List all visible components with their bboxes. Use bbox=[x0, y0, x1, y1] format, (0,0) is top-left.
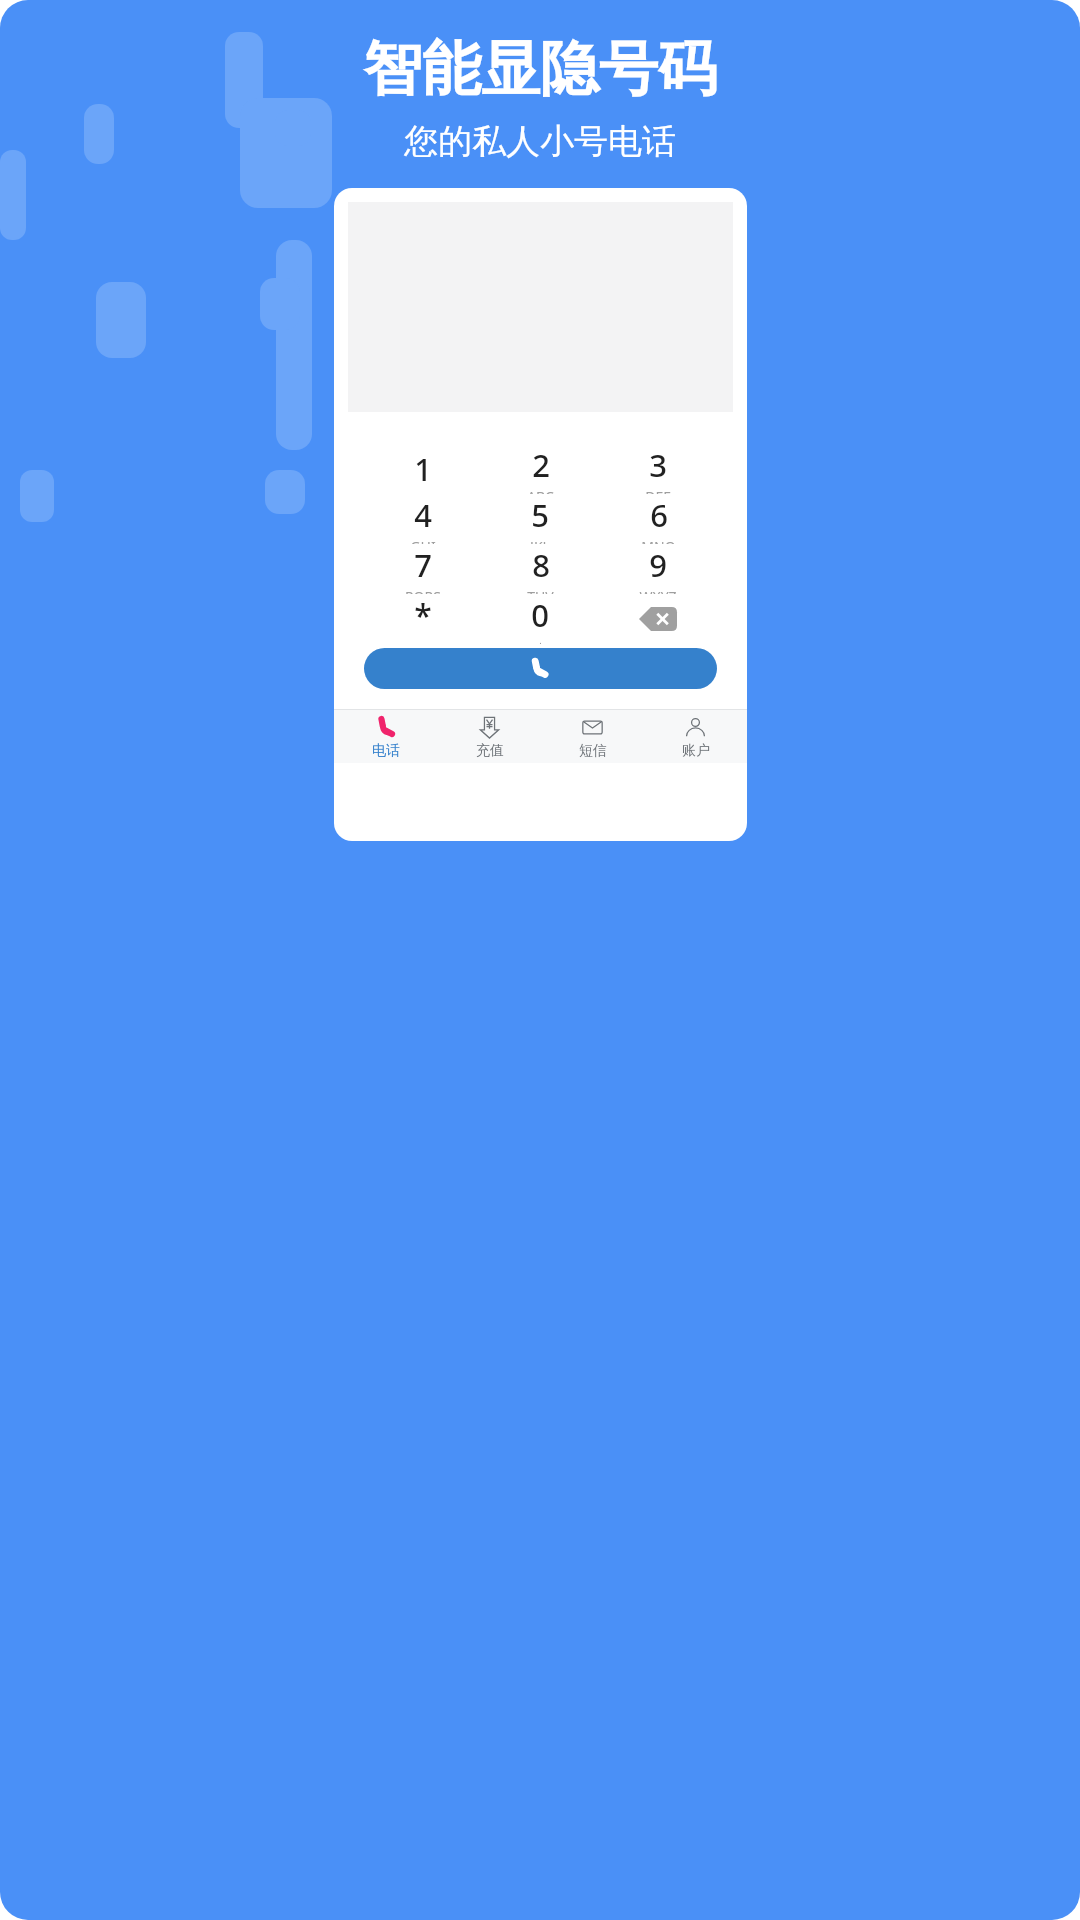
button[interactable]: 4 bbox=[364, 494, 481, 544]
staticText: 2 bbox=[532, 444, 550, 486]
staticText: MNO bbox=[641, 537, 676, 544]
staticText: 8 bbox=[532, 544, 550, 586]
button[interactable]: 1 bbox=[364, 444, 481, 494]
staticText: GHI bbox=[410, 537, 436, 544]
button[interactable]: 5 bbox=[481, 494, 599, 544]
staticText: 5 bbox=[531, 494, 549, 536]
staticText: 账户 bbox=[682, 742, 710, 760]
button[interactable]: 7 bbox=[364, 544, 481, 594]
staticText: 1 bbox=[414, 448, 432, 490]
staticText: + bbox=[536, 637, 545, 644]
staticText: 9 bbox=[649, 544, 667, 586]
staticText: TUV bbox=[527, 587, 554, 594]
staticText: 7 bbox=[414, 544, 432, 586]
button[interactable]: 账户 bbox=[644, 710, 747, 763]
button[interactable]: 0 bbox=[481, 594, 599, 644]
staticText: 0 bbox=[531, 594, 549, 636]
button[interactable]: * bbox=[364, 594, 481, 644]
button[interactable]: 电话 bbox=[334, 710, 438, 763]
button[interactable]: 6 bbox=[599, 494, 717, 544]
button[interactable]: Call bbox=[364, 648, 717, 689]
staticText: 3 bbox=[649, 444, 667, 486]
button[interactable]: 3 bbox=[599, 444, 717, 494]
staticText: 智能显隐号码 bbox=[363, 32, 717, 106]
button[interactable]: 短信 bbox=[541, 710, 644, 763]
button[interactable]: 9 bbox=[599, 544, 717, 594]
button[interactable]: 充值 bbox=[438, 710, 541, 763]
staticText: 充值 bbox=[476, 742, 504, 760]
staticText: 您的私人小号电话 bbox=[404, 120, 676, 163]
staticText: DEF bbox=[645, 487, 671, 494]
staticText: 电话 bbox=[372, 742, 400, 760]
button[interactable]: 2 bbox=[481, 444, 599, 494]
staticText: ABC bbox=[527, 487, 554, 494]
staticText: 4 bbox=[414, 494, 432, 536]
staticText: JKL bbox=[530, 537, 550, 544]
staticText: * bbox=[414, 594, 432, 638]
staticText: 短信 bbox=[579, 742, 607, 760]
button[interactable]: Delete bbox=[599, 594, 717, 644]
button[interactable]: 8 bbox=[481, 544, 599, 594]
staticText: PQRS bbox=[405, 587, 441, 594]
staticText: 6 bbox=[650, 494, 668, 536]
staticText: WXYZ bbox=[639, 587, 677, 594]
